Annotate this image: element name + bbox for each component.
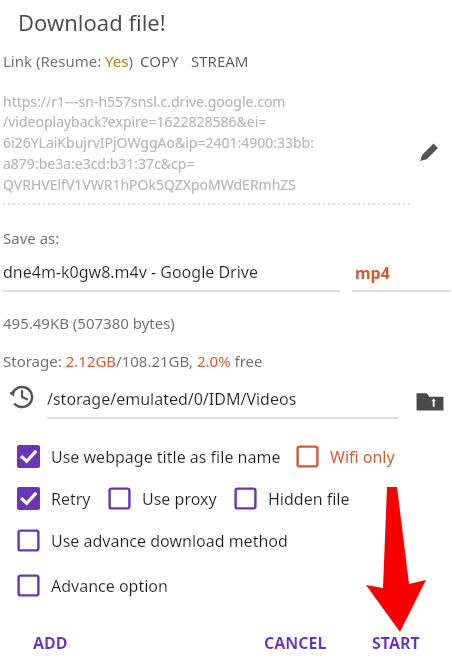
button[interactable]: START (368, 628, 424, 658)
button[interactable]: Wifi only (296, 445, 395, 468)
button[interactable]: History (8, 383, 36, 411)
staticText: Use webpage title as file name (51, 446, 281, 468)
button[interactable]: COPY (133, 51, 186, 71)
button[interactable]: STREAM (186, 51, 254, 71)
staticText: Storage: 2.12GB/108.21GB, 2.0% free (3, 351, 263, 371)
button[interactable]: Hidden file (234, 487, 257, 510)
staticText: Link (Resume: Yes) (3, 51, 133, 71)
staticText: ADD (33, 632, 68, 654)
button[interactable]: Use webpage title as file name (17, 445, 281, 468)
button[interactable]: Use webpage title as file name (17, 445, 40, 468)
button[interactable]: Use advance download method (17, 529, 288, 552)
button[interactable]: Use proxy (108, 487, 217, 510)
button[interactable]: Wifi only (296, 445, 319, 468)
staticText: CANCEL (264, 632, 327, 654)
button[interactable]: Advance option (17, 574, 40, 597)
button[interactable]: Advance option (17, 574, 168, 597)
staticText: Use advance download method (51, 530, 288, 552)
staticText: Hidden file (268, 488, 350, 510)
staticText: Use proxy (142, 488, 217, 510)
button[interactable]: Use proxy (108, 487, 131, 510)
staticText: /storage/emulated/0/IDM/Videos (47, 388, 297, 410)
staticText: Save as: (3, 228, 60, 248)
button[interactable]: Choose folder (414, 385, 446, 417)
staticText: Download file! (18, 7, 166, 37)
staticText: Retry (51, 488, 91, 510)
button[interactable]: CANCEL (260, 628, 331, 658)
button[interactable]: ADD (29, 628, 72, 658)
button[interactable]: Hidden file (234, 487, 350, 510)
button[interactable]: Retry (17, 487, 91, 510)
staticText: Advance option (51, 575, 168, 597)
staticText: mp4 (355, 262, 390, 284)
staticText: Wifi only (330, 446, 395, 468)
staticText: STREAM (191, 51, 249, 71)
button[interactable]: Use advance download method (17, 529, 40, 552)
staticText: https://r1---sn-h557snsl.c.drive.google.… (3, 92, 408, 195)
button[interactable]: Edit link (415, 138, 443, 166)
staticText: COPY (140, 51, 179, 71)
staticText: 495.49KB (507380 bytes) (3, 313, 175, 333)
staticText: dne4m-k0gw8.m4v - Google Drive (3, 261, 259, 283)
button[interactable]: Retry (17, 487, 40, 510)
staticText: START (372, 632, 420, 654)
